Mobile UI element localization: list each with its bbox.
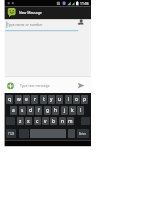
staticText: Type text message: [20, 83, 50, 88]
button[interactable]: ?123: [6, 129, 16, 138]
button[interactable]: c: [34, 117, 41, 125]
button[interactable]: v: [42, 117, 49, 125]
staticText: a: [12, 107, 15, 114]
staticText: New Message: [19, 10, 42, 15]
staticText: v: [44, 118, 47, 125]
staticText: n: [61, 118, 64, 125]
staticText: 11:06: [80, 1, 89, 6]
button[interactable]: k: [69, 106, 76, 115]
staticText: b: [52, 118, 55, 125]
staticText: l: [80, 107, 82, 114]
button[interactable]: [76, 81, 86, 90]
staticText: c: [36, 118, 39, 125]
button[interactable]: g: [44, 106, 51, 115]
button[interactable]: [68, 129, 75, 138]
staticText: Enter: [79, 132, 87, 136]
staticText: e: [25, 96, 28, 103]
staticText: m: [68, 118, 73, 125]
button[interactable]: [5, 7, 91, 20]
button[interactable]: e: [23, 95, 30, 104]
staticText: y: [50, 96, 53, 103]
button[interactable]: h: [52, 106, 59, 115]
button[interactable]: l: [77, 106, 84, 115]
button[interactable]: i: [65, 95, 72, 104]
button[interactable]: [77, 18, 86, 26]
staticText: o: [75, 96, 78, 103]
staticText: g: [46, 107, 49, 114]
staticText: Type name or number: [7, 22, 43, 27]
button[interactable]: a: [10, 106, 17, 115]
button[interactable]: [7, 82, 15, 90]
button[interactable]: y: [48, 95, 55, 104]
button[interactable]: n: [59, 117, 66, 125]
staticText: ?123: [8, 132, 15, 136]
staticText: r: [34, 96, 36, 103]
staticText: s: [21, 107, 24, 114]
staticText: x: [27, 118, 30, 125]
staticText: p: [83, 96, 86, 103]
button[interactable]: b: [50, 117, 57, 125]
button[interactable]: m: [67, 117, 74, 125]
button[interactable]: Enter: [77, 129, 89, 138]
button[interactable]: t: [40, 95, 47, 104]
staticText: f: [38, 107, 40, 114]
staticText: i: [68, 96, 70, 103]
button[interactable]: z: [17, 117, 24, 125]
staticText: k: [71, 107, 74, 114]
staticText: w: [17, 96, 21, 103]
button[interactable]: o: [73, 95, 80, 104]
staticText: d: [29, 107, 32, 114]
staticText: h: [54, 107, 57, 114]
staticText: q: [8, 96, 11, 103]
button[interactable]: [5, 19, 77, 31]
button[interactable]: x: [25, 117, 32, 125]
button[interactable]: f: [35, 106, 42, 115]
staticText: t: [43, 96, 45, 103]
staticText: u: [58, 96, 61, 103]
button[interactable]: r: [31, 95, 38, 104]
staticText: j: [64, 107, 66, 114]
button[interactable]: u: [56, 95, 63, 104]
button[interactable]: q: [6, 95, 13, 104]
staticText: z: [19, 118, 22, 125]
button[interactable]: j: [61, 106, 68, 115]
button[interactable]: w: [15, 95, 22, 104]
button[interactable]: s: [19, 106, 26, 115]
button[interactable]: [16, 77, 74, 92]
button[interactable]: d: [27, 106, 34, 115]
button[interactable]: p: [81, 95, 88, 104]
